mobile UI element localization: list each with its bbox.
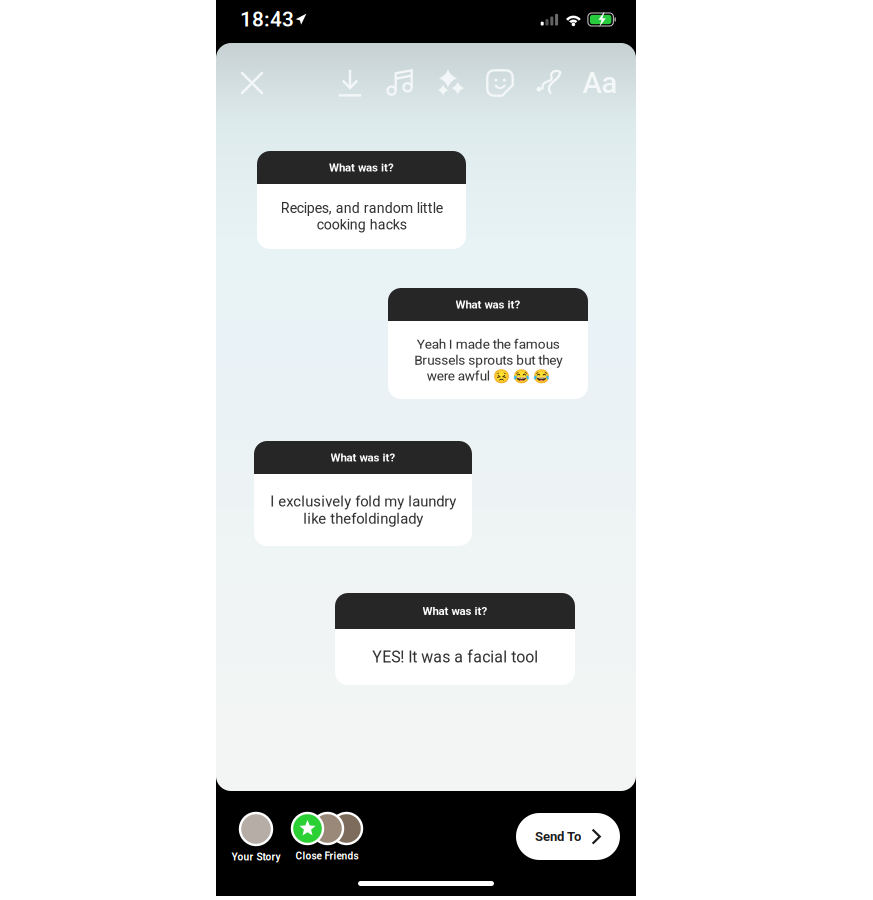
staticText: Yeah I made the famous Brussels sprouts … [414,336,562,384]
staticText: Aa [582,66,617,100]
button[interactable]: Close [228,59,276,107]
staticText: Recipes, and random little cooking hacks [280,200,442,233]
staticText: What was it? [330,451,395,464]
button[interactable]: Your Story [232,813,280,863]
button[interactable]: Music [375,59,425,107]
staticText: Your Story [231,851,280,863]
button[interactable]: Send To [516,813,620,860]
staticText: What was it? [329,161,394,174]
button[interactable]: Stickers [475,59,525,107]
staticText: I exclusively fold my laundry like thefo… [270,493,456,527]
button[interactable]: Draw [525,59,575,107]
staticText: YES! It was a facial tool [372,648,538,666]
button[interactable]: Save [325,59,375,107]
staticText: Send To [535,829,581,844]
button[interactable]: Close Friends [292,813,362,862]
button[interactable]: Text [575,59,625,107]
staticText: 18:43 [240,7,294,32]
staticText: What was it? [422,604,487,618]
button[interactable]: Effects [425,59,475,107]
staticText: Close Friends [295,850,358,862]
staticText: What was it? [455,298,520,311]
